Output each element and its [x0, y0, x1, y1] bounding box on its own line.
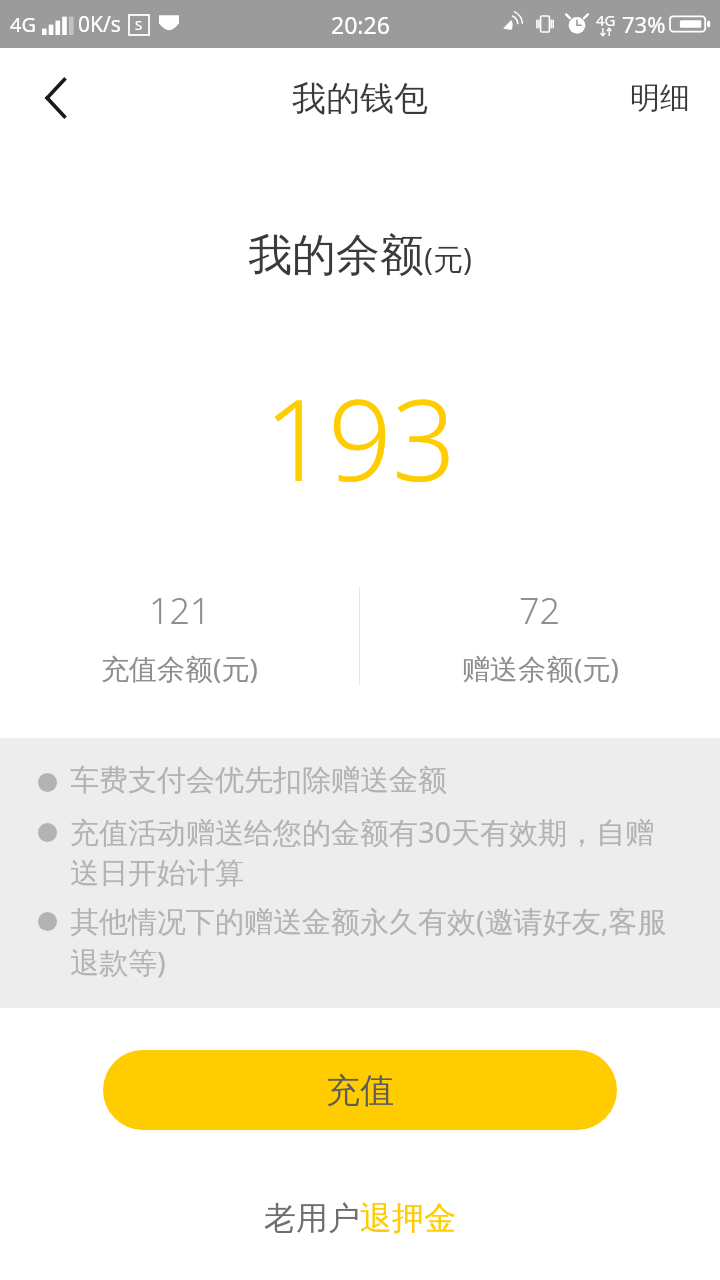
button[interactable]: Back	[26, 68, 86, 128]
staticText: 我的钱包	[292, 77, 428, 120]
staticText: 充值活动赠送给您的金额有30天有效期，自赠送日开始计算	[70, 812, 680, 891]
staticText: 其他情况下的赠送金额永久有效(邀请好友,客服退款等)	[70, 901, 680, 982]
staticText: 充值余额(元)	[101, 649, 258, 686]
staticText: 明细	[630, 79, 690, 117]
button[interactable]: 明细	[600, 61, 720, 135]
staticText: 20:26	[331, 9, 390, 40]
staticText: 4G	[10, 11, 36, 38]
staticText: 121	[149, 586, 211, 635]
staticText: 73%	[622, 9, 666, 39]
button[interactable]: 老用户退押金	[240, 1186, 480, 1250]
staticText: 车费支付会优先扣除赠送金额	[70, 762, 447, 799]
staticText: 4G	[596, 10, 616, 30]
staticText: 193	[264, 361, 456, 514]
staticText: 充值	[326, 1069, 394, 1112]
staticText: 我的余额(元)	[248, 228, 472, 283]
button[interactable]: 充值	[103, 1050, 617, 1130]
staticText: 赠送余额(元)	[462, 649, 619, 686]
staticText: S	[135, 16, 143, 34]
staticText: 老用户退押金	[264, 1198, 456, 1238]
staticText: 0K/s	[78, 10, 121, 39]
staticText: 72	[519, 586, 561, 635]
